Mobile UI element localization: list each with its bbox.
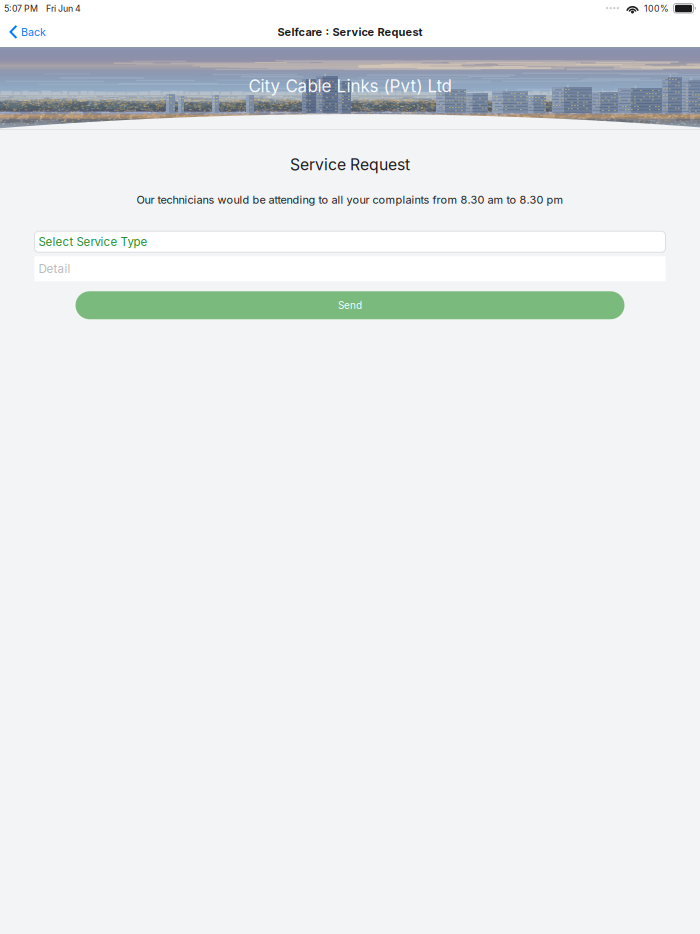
button[interactable]: Detail [34, 256, 665, 281]
staticText: Service Request [290, 155, 410, 174]
staticText: Send [338, 299, 362, 311]
button[interactable]: Back [4, 20, 54, 43]
staticText: Selfcare : Service Request [277, 25, 422, 39]
staticText: Back [21, 25, 46, 38]
staticText: 100% [644, 3, 669, 14]
button[interactable]: Send [75, 291, 624, 319]
button[interactable]: Select Service Type [34, 231, 665, 252]
staticText: 5:07 PM [4, 3, 38, 14]
staticText: Select Service Type [38, 235, 147, 249]
staticText: Fri Jun 4 [46, 3, 81, 14]
staticText: Our technicians would be attending to al… [136, 193, 563, 206]
staticText: City Cable Links (Pvt) Ltd [248, 76, 451, 96]
staticText: Detail [38, 262, 70, 276]
